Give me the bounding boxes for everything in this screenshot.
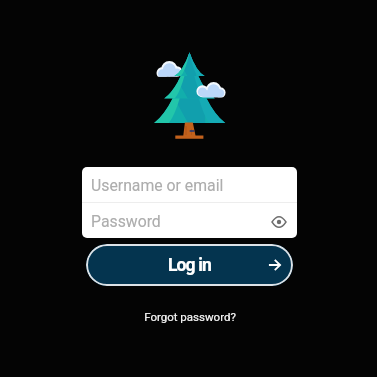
button[interactable]: Log in <box>86 244 293 286</box>
staticText: Username or email <box>91 176 224 195</box>
button[interactable]: Username or email <box>82 167 297 202</box>
staticText: Forgot password? <box>144 310 236 323</box>
button[interactable]: Password <box>82 203 297 238</box>
staticText: Password <box>91 212 161 231</box>
button[interactable]: Show password <box>266 209 291 234</box>
staticText: Log in <box>168 255 211 276</box>
button[interactable]: Forgot password? <box>125 305 255 327</box>
